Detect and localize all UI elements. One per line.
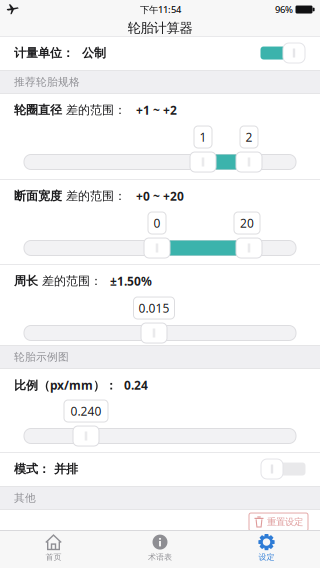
staticText: 术语表 <box>148 552 172 562</box>
staticText: 推荐轮胎规格 <box>14 75 80 88</box>
staticText: 差的范围： <box>62 103 126 117</box>
staticText: 0 <box>153 215 160 231</box>
staticText: 0.015 <box>138 300 169 316</box>
staticText: 周长 <box>14 274 38 288</box>
staticText: 差的范围： <box>38 274 102 288</box>
staticText: 轮圈直径 <box>14 103 62 117</box>
staticText: 比例（px/mm）： <box>14 377 117 393</box>
button[interactable]: 首页 <box>0 530 106 566</box>
staticText: 模式： <box>14 462 50 476</box>
staticText: 首页 <box>45 552 61 562</box>
staticText: 20 <box>240 215 254 231</box>
staticText: 0.240 <box>70 403 101 419</box>
staticText: 公制 <box>74 46 106 60</box>
staticText: 断面宽度 <box>14 189 62 203</box>
staticText: 轮胎计算器 <box>127 20 192 36</box>
staticText: +0 ~ +20 <box>136 188 184 204</box>
staticText: 下午11:54 <box>140 3 181 16</box>
button[interactable]: 模式 <box>251 454 315 484</box>
staticText: 计量单位： <box>14 46 74 60</box>
staticText: ±1.50% <box>110 273 152 289</box>
button[interactable]: 术语表 <box>107 530 213 566</box>
staticText: 差的范围： <box>62 189 126 203</box>
staticText: 并排 <box>50 462 78 476</box>
staticText: 轮胎示例图 <box>14 350 69 363</box>
button[interactable]: 设定 <box>213 530 319 566</box>
button[interactable]: 计量单位 <box>251 38 315 68</box>
staticText: 其他 <box>14 491 36 504</box>
staticText: 重置设定 <box>267 516 303 528</box>
staticText: 0.24 <box>124 377 148 393</box>
staticText: 2 <box>245 129 252 145</box>
button[interactable]: 重置设定 <box>249 513 308 531</box>
staticText: +1 ~ +2 <box>136 102 177 118</box>
staticText: 96% <box>275 3 293 16</box>
staticText: 1 <box>199 129 206 145</box>
staticText: 设定 <box>258 552 274 562</box>
